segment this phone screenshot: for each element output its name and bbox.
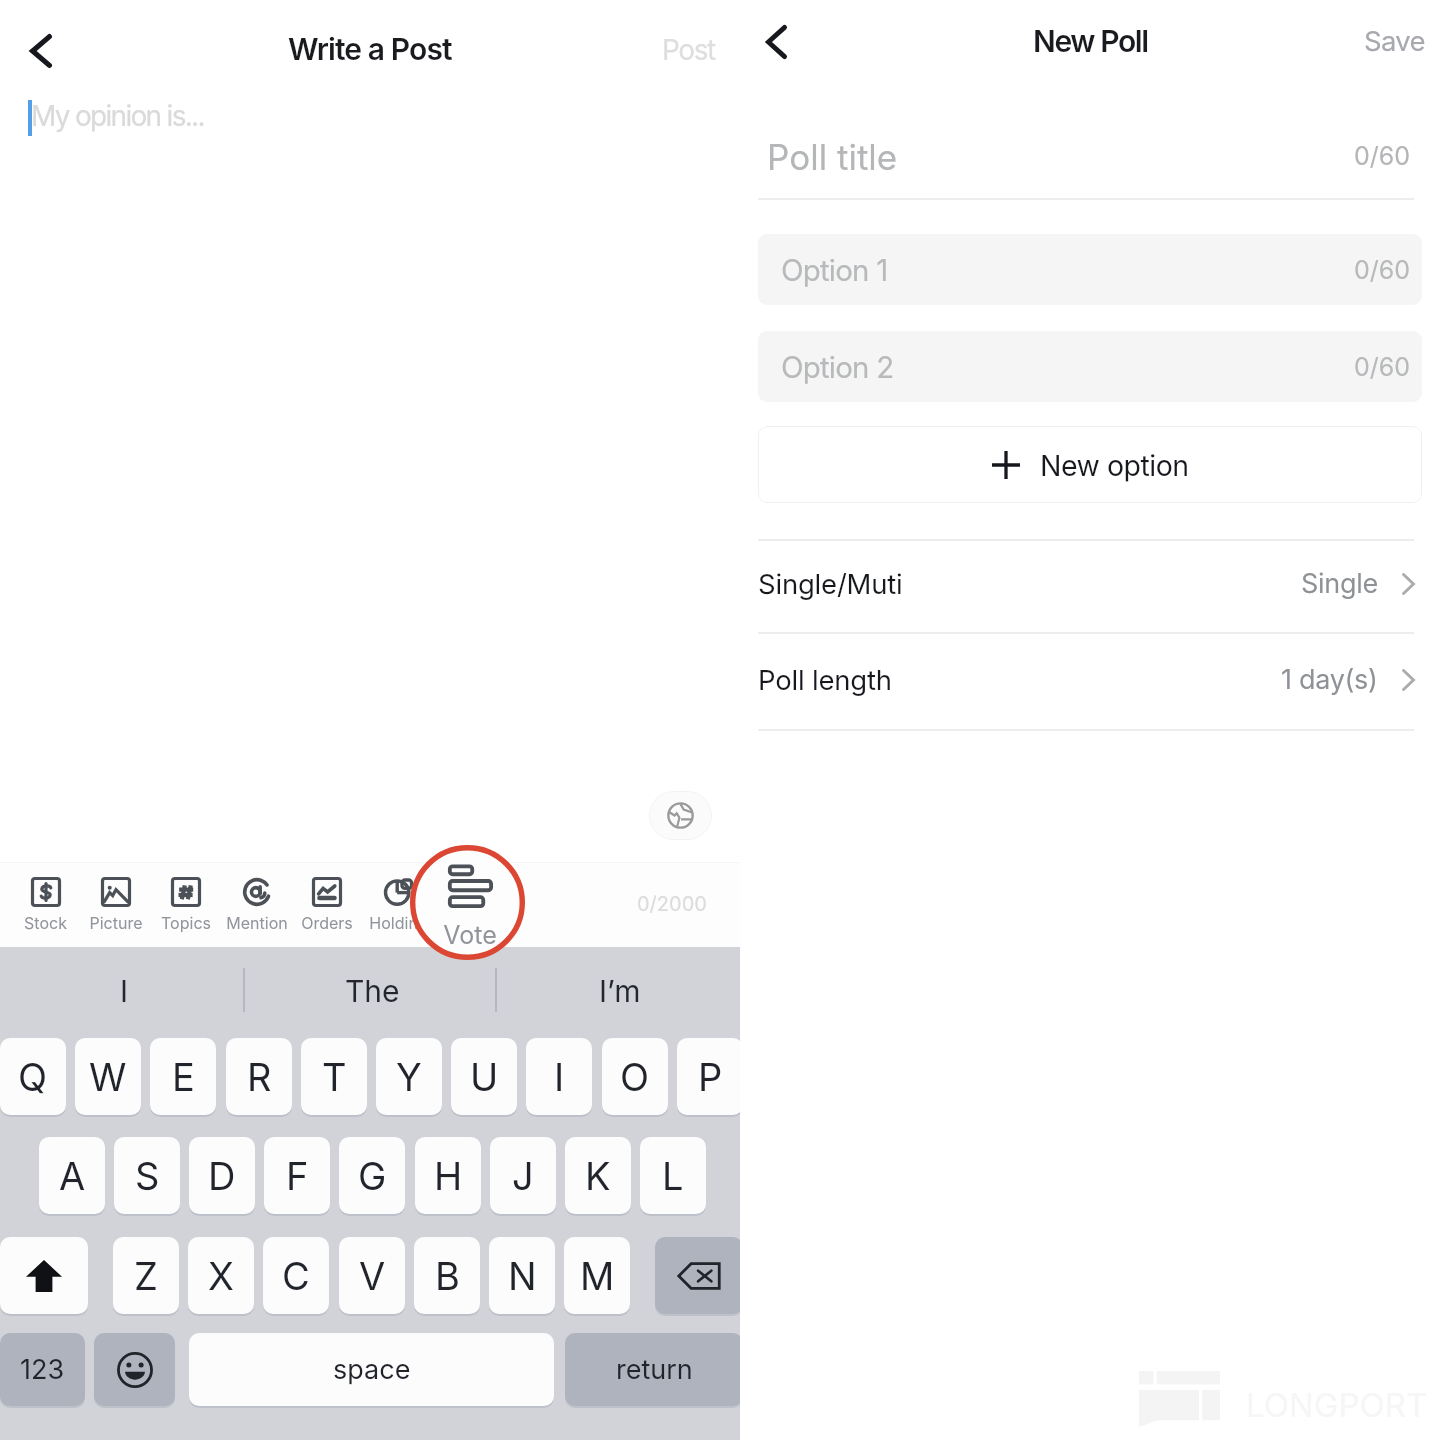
button[interactable]: I: [526, 1038, 592, 1115]
staticText: My opinion is...: [31, 99, 204, 133]
staticText: U: [470, 1054, 499, 1100]
button[interactable]: The: [248, 947, 496, 1035]
staticText: 0/60: [1354, 352, 1411, 382]
staticText: Option 1: [781, 252, 888, 288]
button[interactable]: N: [489, 1237, 555, 1314]
button[interactable]: Emoji: [94, 1333, 175, 1406]
button[interactable]: Topics: [151, 866, 221, 944]
staticText: Mention: [226, 913, 288, 932]
staticText: New Poll: [1033, 23, 1148, 59]
staticText: 0/2000: [637, 892, 707, 916]
button[interactable]: I: [0, 947, 248, 1035]
staticText: Q: [18, 1054, 48, 1100]
button[interactable]: L: [640, 1137, 706, 1214]
button[interactable]: C: [263, 1237, 329, 1314]
button[interactable]: return: [565, 1333, 743, 1406]
staticText: G: [358, 1153, 387, 1199]
staticText: S: [135, 1153, 160, 1199]
button[interactable]: B: [414, 1237, 480, 1314]
staticText: L: [662, 1153, 684, 1199]
staticText: V: [359, 1253, 386, 1299]
button[interactable]: Back: [11, 22, 68, 79]
staticText: T: [322, 1054, 347, 1100]
staticText: O: [620, 1054, 650, 1100]
button[interactable]: Option 2: [758, 331, 1422, 402]
staticText: A: [59, 1153, 86, 1199]
staticText: K: [585, 1153, 611, 1199]
staticText: N: [508, 1253, 537, 1299]
button[interactable]: New option: [758, 426, 1422, 503]
button[interactable]: P: [677, 1038, 743, 1115]
button[interactable]: A: [39, 1137, 105, 1214]
staticText: Write a Post: [288, 31, 452, 67]
button[interactable]: F: [264, 1137, 330, 1214]
button[interactable]: K: [565, 1137, 631, 1214]
staticText: J: [512, 1153, 534, 1199]
button[interactable]: Option 1: [758, 234, 1422, 305]
button[interactable]: Post visibility: [649, 791, 712, 840]
button[interactable]: Single/Muti: [758, 539, 1414, 632]
staticText: Picture: [89, 913, 143, 932]
staticText: New option: [1040, 448, 1189, 482]
button[interactable]: X: [188, 1237, 254, 1314]
button[interactable]: M: [564, 1237, 630, 1314]
button[interactable]: R: [226, 1038, 292, 1115]
button[interactable]: S: [114, 1137, 180, 1214]
button[interactable]: Vote: [435, 858, 505, 950]
staticText: Topics: [161, 913, 211, 932]
button[interactable]: T: [301, 1038, 367, 1115]
staticText: Single: [1301, 567, 1378, 600]
staticText: Poll title: [767, 136, 898, 178]
staticText: I: [554, 1054, 565, 1100]
staticText: W: [89, 1054, 127, 1100]
staticText: P: [698, 1054, 723, 1100]
staticText: return: [616, 1353, 693, 1386]
staticText: Vote: [443, 920, 497, 950]
button[interactable]: Back: [740, 14, 795, 69]
button[interactable]: Save: [1364, 24, 1425, 57]
button[interactable]: Post: [662, 33, 715, 67]
button[interactable]: Holding: [363, 866, 433, 944]
button[interactable]: H: [415, 1137, 481, 1214]
button[interactable]: Stock: [10, 866, 80, 944]
staticText: 0/60: [1354, 141, 1411, 171]
staticText: 123: [20, 1353, 65, 1386]
button[interactable]: W: [75, 1038, 141, 1115]
staticText: Y: [396, 1054, 422, 1100]
button[interactable]: G: [339, 1137, 405, 1214]
staticText: C: [282, 1253, 310, 1299]
button[interactable]: O: [602, 1038, 668, 1115]
button[interactable]: 123: [0, 1333, 85, 1406]
button[interactable]: Backspace: [655, 1237, 743, 1314]
button[interactable]: Vote: [435, 858, 505, 950]
staticText: 1 day(s): [1281, 663, 1378, 696]
staticText: M: [580, 1253, 615, 1299]
button[interactable]: Z: [113, 1237, 179, 1314]
button[interactable]: Poll length: [758, 632, 1414, 730]
staticText: Option 2: [781, 349, 894, 385]
button[interactable]: Q: [0, 1038, 66, 1115]
button[interactable]: space: [189, 1333, 554, 1406]
button[interactable]: Picture: [81, 866, 151, 944]
button[interactable]: I’m: [496, 947, 744, 1035]
staticText: D: [208, 1153, 236, 1199]
staticText: Orders: [301, 913, 353, 932]
button[interactable]: Y: [376, 1038, 442, 1115]
button[interactable]: Mention: [222, 866, 292, 944]
button[interactable]: V: [339, 1237, 405, 1314]
button[interactable]: J: [490, 1137, 556, 1214]
staticText: I: [120, 973, 129, 1009]
staticText: Poll length: [758, 663, 892, 696]
staticText: space: [333, 1353, 411, 1386]
staticText: I’m: [599, 973, 641, 1009]
staticText: 0/60: [1354, 255, 1411, 285]
button[interactable]: E: [150, 1038, 216, 1115]
staticText: R: [247, 1054, 272, 1100]
staticText: Vote: [443, 920, 497, 950]
button[interactable]: U: [451, 1038, 517, 1115]
button[interactable]: Poll title: [758, 116, 1422, 196]
button[interactable]: Orders: [292, 866, 362, 944]
button[interactable]: Shift: [0, 1237, 88, 1314]
button[interactable]: D: [189, 1137, 255, 1214]
staticText: Holding: [369, 913, 428, 932]
